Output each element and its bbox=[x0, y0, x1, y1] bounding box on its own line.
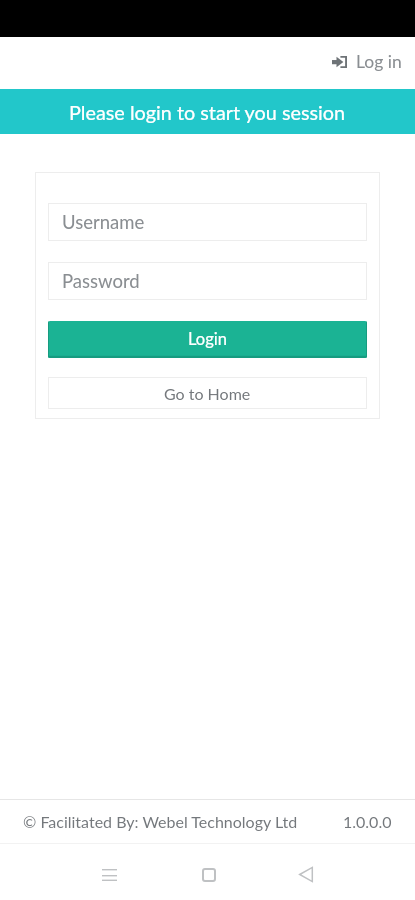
staticText: Go to Home bbox=[164, 384, 251, 403]
button[interactable]: Back bbox=[282, 850, 330, 898]
staticText: Username bbox=[62, 211, 145, 233]
button[interactable]: Home bbox=[185, 851, 233, 899]
button[interactable]: Login bbox=[48, 321, 367, 358]
staticText: Please login to start you session bbox=[69, 100, 346, 124]
button[interactable]: Username bbox=[48, 203, 367, 241]
button[interactable]: Log in bbox=[327, 43, 407, 80]
staticText: Log in bbox=[356, 51, 402, 72]
staticText: 1.0.0.0 bbox=[343, 812, 392, 831]
button[interactable]: Password bbox=[48, 262, 367, 300]
button[interactable]: Recent apps bbox=[85, 851, 133, 899]
other: Log in bbox=[332, 55, 347, 69]
staticText: Login bbox=[188, 329, 227, 349]
staticText: © Facilitated By: Webel Technology Ltd bbox=[23, 812, 298, 831]
button[interactable]: Go to Home bbox=[48, 377, 367, 409]
staticText: Password bbox=[62, 270, 140, 292]
